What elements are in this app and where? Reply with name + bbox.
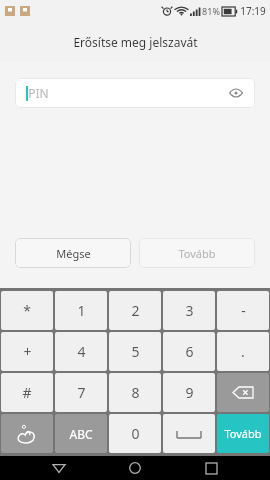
staticText: 9 <box>185 383 194 402</box>
button[interactable]: Back <box>42 456 76 480</box>
button[interactable]: 9 <box>163 373 215 412</box>
button[interactable]: + <box>1 332 53 371</box>
button[interactable]: Tovább <box>217 414 269 453</box>
button[interactable]: Handwriting <box>1 414 53 453</box>
button[interactable]: ABC <box>55 414 107 453</box>
button[interactable]: PIN <box>15 78 255 108</box>
button[interactable]: 3 <box>163 291 215 330</box>
staticText: Mégse <box>56 246 91 261</box>
staticText: Erősítse meg jelszavát <box>73 34 198 50</box>
button[interactable]: - <box>217 291 269 330</box>
staticText: 3 <box>185 301 194 320</box>
button[interactable]: 1 <box>55 291 107 330</box>
button[interactable]: 7 <box>55 373 107 412</box>
button[interactable]: . <box>217 332 269 371</box>
button[interactable]: Backspace <box>217 373 269 412</box>
button[interactable]: # <box>1 373 53 412</box>
button[interactable]: Show password <box>226 83 246 103</box>
staticText: Tovább <box>178 246 216 261</box>
button[interactable]: Home <box>118 456 152 480</box>
staticText: . <box>241 342 245 361</box>
staticText: 8 <box>131 383 140 402</box>
staticText: 4 <box>77 342 86 361</box>
staticText: 0 <box>131 424 140 443</box>
staticText: 7 <box>77 383 86 402</box>
button[interactable]: 0 <box>109 414 161 453</box>
button[interactable]: 4 <box>55 332 107 371</box>
button[interactable]: 8 <box>109 373 161 412</box>
button[interactable]: 2 <box>109 291 161 330</box>
button[interactable]: Recents <box>194 456 228 480</box>
button[interactable]: * <box>1 291 53 330</box>
staticText: 17:19 <box>240 4 266 18</box>
staticText: 2 <box>131 301 140 320</box>
button[interactable]: Tovább <box>139 238 255 268</box>
staticText: 5 <box>131 342 140 361</box>
staticText: PIN <box>28 85 49 101</box>
staticText: * <box>23 301 31 320</box>
staticText: 1 <box>77 301 86 320</box>
staticText: 6 <box>185 342 194 361</box>
staticText: - <box>241 301 246 320</box>
staticText: # <box>22 383 32 402</box>
staticText: 81% <box>202 5 220 17</box>
staticText: + <box>23 342 32 361</box>
staticText: ABC <box>69 426 93 442</box>
button[interactable]: 5 <box>109 332 161 371</box>
button[interactable]: Mégse <box>15 238 131 268</box>
button[interactable]: 6 <box>163 332 215 371</box>
staticText: Tovább <box>224 426 262 441</box>
button[interactable]: Space <box>163 414 215 453</box>
